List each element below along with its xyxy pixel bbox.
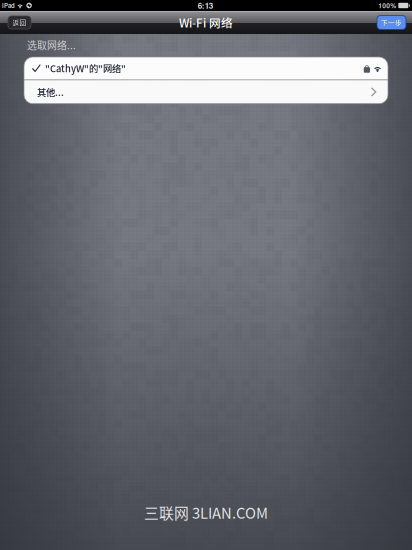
staticText: "CathyW"的"网络" [45, 61, 126, 75]
staticText: Wi-Fi 网络 [179, 14, 233, 31]
button[interactable]: 下一步 [377, 15, 406, 29]
staticText: 选取网络... [27, 38, 76, 52]
staticText: 6:13 [198, 0, 213, 11]
staticText: iPad [2, 1, 15, 10]
button[interactable]: "CathyW"的"网络" [24, 57, 388, 79]
staticText: 三联网 3LIAN.COM [144, 502, 268, 523]
staticText: 返回 [12, 18, 26, 27]
staticText: 100% [378, 1, 396, 10]
staticText: 其他... [37, 85, 64, 99]
button[interactable]: 返回 [8, 16, 31, 29]
staticText: 下一步 [381, 18, 402, 27]
button[interactable]: 其他... [24, 80, 388, 104]
